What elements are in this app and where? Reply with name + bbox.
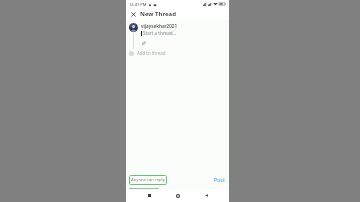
staticText: vijaysekhar2021: [141, 23, 178, 29]
staticText: Anyone can reply: [131, 177, 165, 183]
button[interactable]: Recents: [144, 190, 155, 201]
button[interactable]: Close: [128, 9, 138, 19]
button[interactable]: Profile picture: [129, 23, 138, 32]
button[interactable]: Anyone can reply: [129, 175, 167, 185]
staticText: 12:41 PM: [129, 2, 147, 7]
button[interactable]: Back: [201, 190, 212, 201]
staticText: Start a thread...: [143, 30, 177, 36]
button[interactable]: Add to thread: [129, 50, 229, 56]
button[interactable]: Home: [172, 190, 183, 201]
staticText: New Thread: [140, 10, 176, 18]
staticText: Post: [214, 177, 225, 184]
button[interactable]: Attach media: [141, 39, 150, 48]
staticText: Add to thread: [137, 50, 166, 56]
button[interactable]: Post: [212, 175, 227, 186]
